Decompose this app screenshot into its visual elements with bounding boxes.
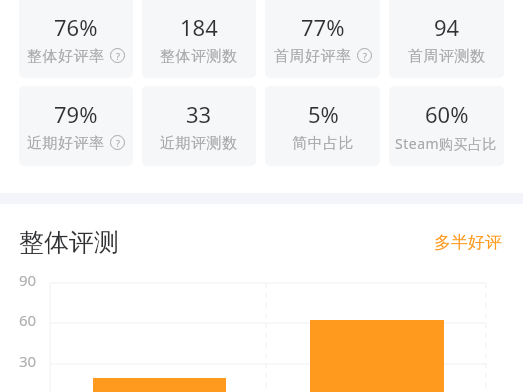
staticText: ? — [116, 50, 120, 62]
staticText: 76% — [54, 12, 98, 42]
other: 说明 — [110, 135, 125, 150]
staticText: 184 — [180, 12, 218, 42]
staticText: 90 — [19, 270, 37, 290]
staticText: 近期好评率 — [27, 134, 105, 153]
staticText: 94 — [434, 12, 460, 42]
staticText: ? — [363, 50, 367, 62]
staticText: 首周好评率 — [274, 47, 352, 66]
staticText: 首周评测数 — [408, 47, 486, 66]
staticText: 60 — [19, 310, 37, 330]
staticText: 60% — [425, 99, 469, 129]
staticText: 整体评测数 — [160, 47, 238, 66]
staticText: 整体好评率 — [27, 47, 105, 66]
button[interactable]: 5% — [265, 86, 380, 166]
staticText: 近期评测数 — [160, 134, 238, 153]
staticText: 77% — [301, 12, 345, 42]
button[interactable]: 60% — [389, 86, 504, 166]
button[interactable]: 184 — [142, 0, 256, 78]
other: 说明 — [110, 48, 125, 63]
button[interactable]: 多半好评 — [432, 226, 504, 259]
staticText: 5% — [308, 99, 339, 129]
button[interactable]: 77% — [265, 0, 380, 78]
other: 说明 — [357, 48, 372, 63]
staticText: Steam购买占比 — [395, 134, 498, 153]
staticText: 简中占比 — [292, 134, 354, 153]
button[interactable]: 76% — [19, 0, 133, 78]
staticText: 整体评测 — [19, 227, 119, 258]
staticText: 30 — [19, 351, 37, 371]
button[interactable]: 33 — [142, 86, 256, 166]
staticText: 多半好评 — [434, 232, 502, 253]
button[interactable]: 79% — [19, 86, 133, 166]
staticText: 33 — [186, 99, 212, 129]
staticText: ? — [116, 137, 120, 149]
staticText: 79% — [54, 99, 98, 129]
button[interactable]: 94 — [389, 0, 504, 78]
